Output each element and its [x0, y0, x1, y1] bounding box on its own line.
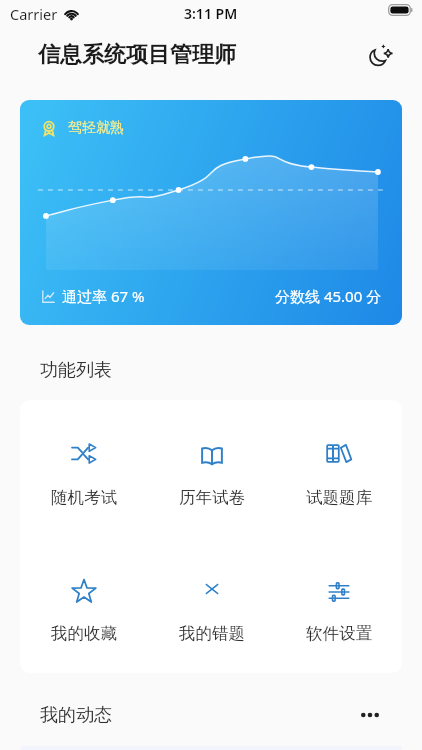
staticText: 我的动态 — [40, 704, 112, 727]
staticText: 功能列表 — [40, 359, 112, 382]
button[interactable]: 驾轻就熟 — [20, 100, 402, 325]
staticText: 软件设置 — [306, 623, 372, 644]
staticText: 我的错题 — [179, 623, 245, 644]
button[interactable]: 我的错题 — [148, 536, 275, 673]
button[interactable]: More — [356, 701, 384, 729]
staticText: 随机考试 — [51, 487, 117, 508]
button[interactable]: Dark mode — [366, 40, 396, 70]
button[interactable]: 软件设置 — [275, 536, 402, 673]
button[interactable]: 随机考试 — [20, 400, 148, 536]
staticText: 通过率 67 % — [62, 286, 145, 306]
staticText: 3:11 PM — [184, 4, 238, 23]
staticText: 历年试卷 — [179, 487, 245, 508]
staticText: 分数线 45.00 分 — [275, 286, 382, 306]
button[interactable]: 我的收藏 — [20, 536, 148, 673]
staticText: 我的收藏 — [51, 623, 117, 644]
button[interactable]: 试题题库 — [275, 400, 402, 536]
button[interactable]: 历年试卷 — [148, 400, 275, 536]
staticText: Carrier — [10, 4, 58, 24]
staticText: 驾轻就熟 — [68, 119, 124, 137]
staticText: 信息系统项目管理师 — [38, 41, 236, 69]
staticText: 试题题库 — [306, 487, 372, 508]
